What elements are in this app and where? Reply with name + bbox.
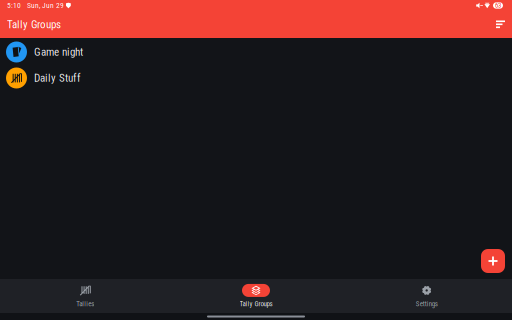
button[interactable]: Tallies [0, 279, 171, 313]
button[interactable]: Sort [492, 16, 509, 32]
staticText: Tally Groups [239, 300, 272, 308]
button[interactable]: Settings [341, 279, 512, 313]
staticText: Settings [416, 300, 438, 308]
button[interactable]: Game night [0, 39, 512, 65]
button[interactable]: Daily Stuff [0, 65, 512, 91]
staticText: 63 [495, 2, 501, 9]
staticText: Daily Stuff [34, 71, 81, 84]
staticText: Tally Groups [7, 18, 61, 31]
staticText: Tallies [76, 300, 94, 308]
staticText: Game night [34, 45, 83, 58]
button[interactable]: Tally Groups [171, 279, 341, 313]
staticText: Sun, Jun 29 [27, 1, 64, 10]
button[interactable]: Add tally group [481, 249, 505, 273]
staticText: 5:10 [7, 1, 21, 10]
